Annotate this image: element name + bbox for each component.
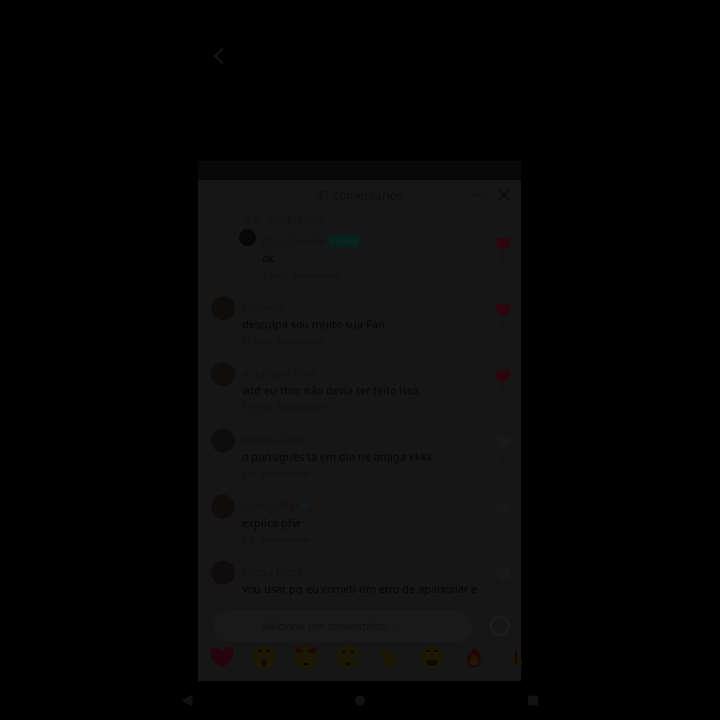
staticText: o português tá em dia ne amiga kkkk — [242, 449, 433, 464]
button[interactable]: Back — [203, 40, 235, 72]
button[interactable]: React with crying face — [327, 642, 369, 672]
button[interactable]: React with laughing face — [411, 642, 453, 672]
button[interactable]: React with smiling face with hearts — [285, 642, 327, 672]
button[interactable]: Recent apps — [505, 681, 561, 720]
staticText: explica pfvr — [242, 516, 301, 530]
button[interactable]: React with heart — [201, 642, 243, 672]
button[interactable]: React with thumbs up — [369, 642, 411, 672]
button[interactable]: Home — [332, 681, 388, 720]
button[interactable]: React with fire — [453, 642, 495, 672]
staticText: desculpa sou muito sua Fan — [242, 317, 385, 331]
staticText: ok — [262, 251, 274, 265]
button[interactable]: React with surprised face — [243, 642, 285, 672]
button[interactable]: React with folded hands — [495, 642, 537, 672]
staticText: Vou usar pq eu cometi um erro de apaixon… — [242, 582, 477, 596]
staticText: vdd eu tbm não devia ter feito isso. — [242, 383, 421, 397]
